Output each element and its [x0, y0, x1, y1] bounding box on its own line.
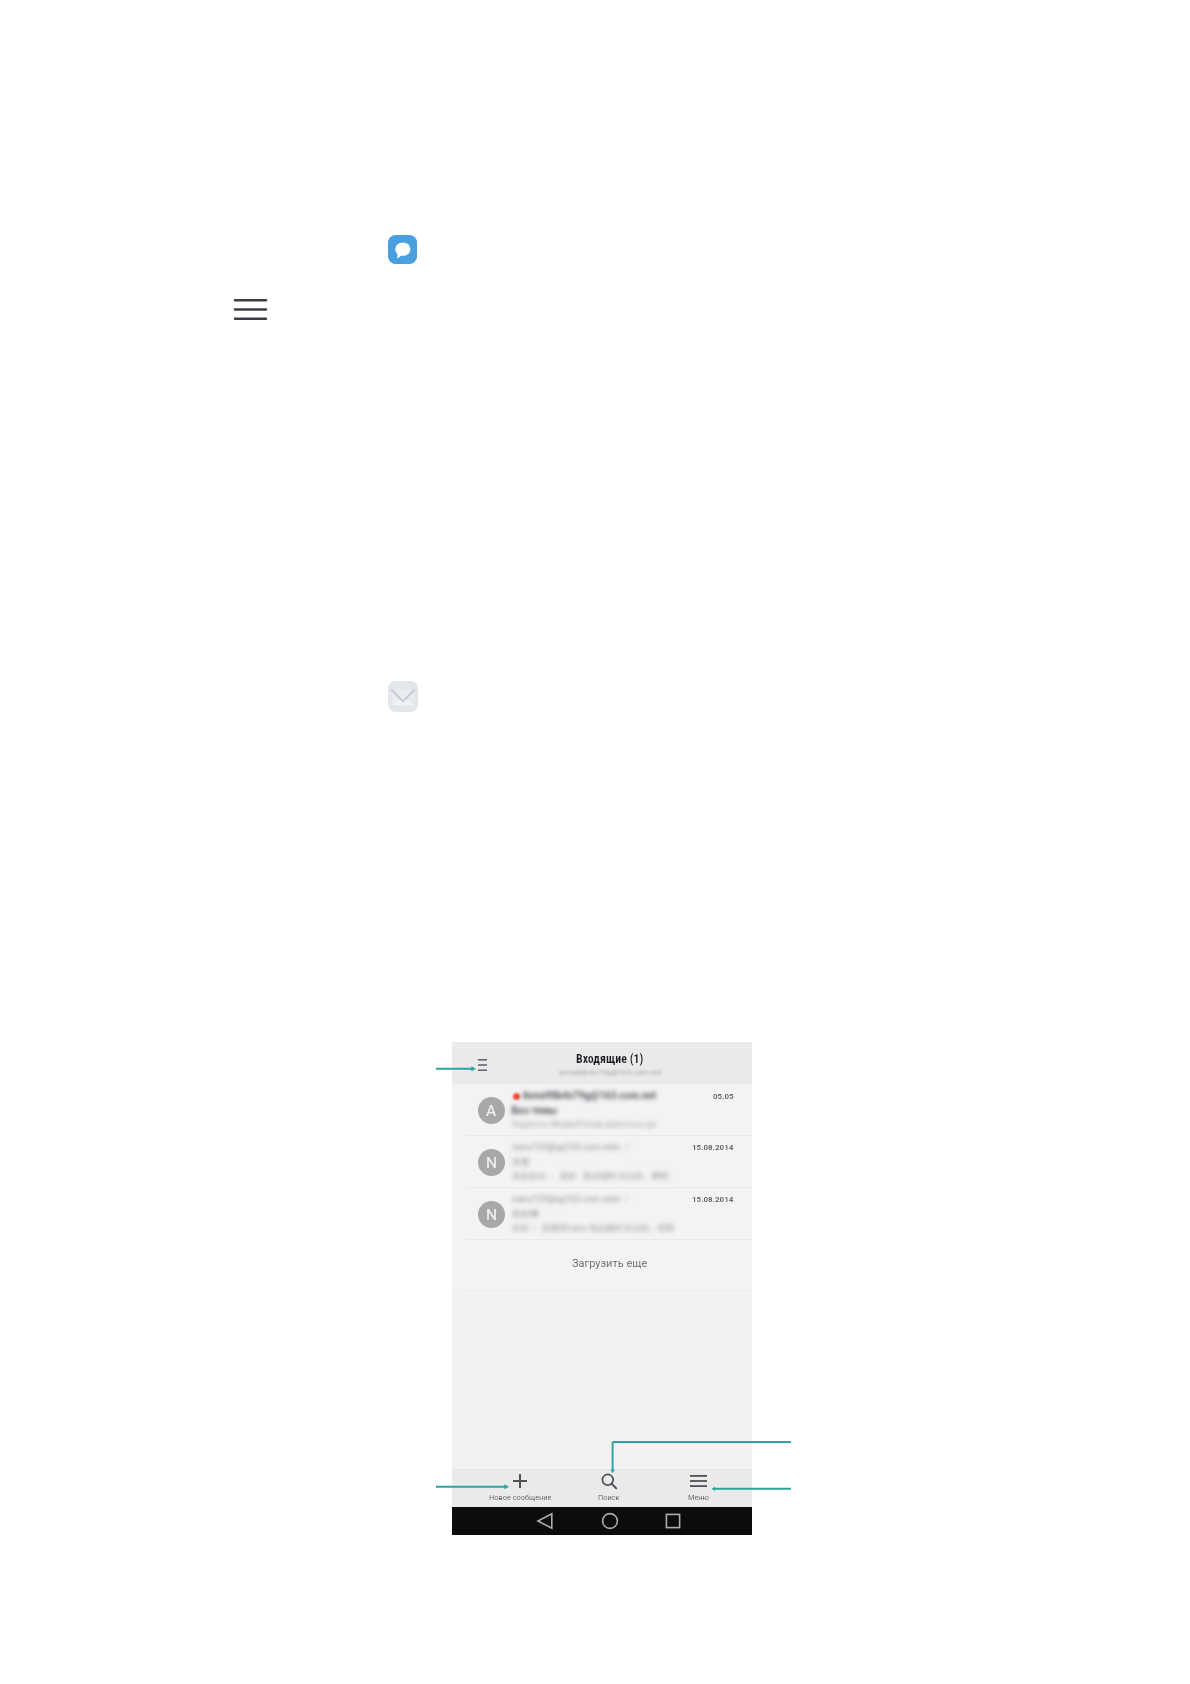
staticText: Поиск: [598, 1493, 620, 1502]
staticText: Anna98b4x79g@163.com.net: [522, 1090, 657, 1102]
staticText: Меню: [688, 1493, 709, 1502]
button[interactable]: N: [452, 1188, 752, 1240]
button[interactable]: Menu: [235, 299, 266, 320]
staticText: anna88b4x79g@163.com.net: [559, 1068, 662, 1077]
staticText: nano123@qq163.com.netx ⁄: [512, 1142, 629, 1153]
button[interactable]: Поиск: [564, 1470, 654, 1507]
button[interactable]: Email: [388, 681, 418, 712]
staticText: 15.08.2014: [692, 1195, 734, 1204]
staticText: 你好啊: [512, 1208, 539, 1219]
button[interactable]: Меню: [653, 1470, 743, 1507]
staticText: 你好！ 我要和nano 我会随时关注的。吧呀: [512, 1223, 675, 1234]
staticText: N: [486, 1206, 498, 1224]
staticText: nano123@qq163.com.netx ⁄: [512, 1194, 629, 1205]
button[interactable]: Загрузить еще: [452, 1240, 752, 1290]
button[interactable]: Back: [529, 1507, 561, 1535]
staticText: N: [486, 1154, 498, 1172]
button[interactable]: Messages: [388, 235, 417, 264]
staticText: 15.08.2014: [692, 1143, 734, 1152]
staticText: Входящие (1): [576, 1052, 644, 1066]
staticText: Новое сообщение: [489, 1493, 552, 1502]
button[interactable]: N: [452, 1136, 752, 1188]
button[interactable]: Open navigation drawer: [471, 1054, 493, 1076]
staticText: 05.05: [713, 1092, 734, 1101]
staticText: A: [486, 1102, 497, 1120]
button[interactable]: Recent apps: [657, 1507, 689, 1535]
button[interactable]: Новое сообщение: [475, 1470, 565, 1507]
button[interactable]: A: [452, 1084, 752, 1136]
staticText: Без темы: [512, 1105, 558, 1117]
staticText: 发送给你： 是的 我会随时关注的。啊吧: [512, 1171, 669, 1182]
staticText: 回复: [512, 1156, 530, 1167]
staticText: Загрузить еще: [572, 1257, 648, 1270]
button[interactable]: Home: [594, 1507, 626, 1535]
staticText: Надеюсь МедиаПлеер довольно да: [512, 1119, 657, 1129]
